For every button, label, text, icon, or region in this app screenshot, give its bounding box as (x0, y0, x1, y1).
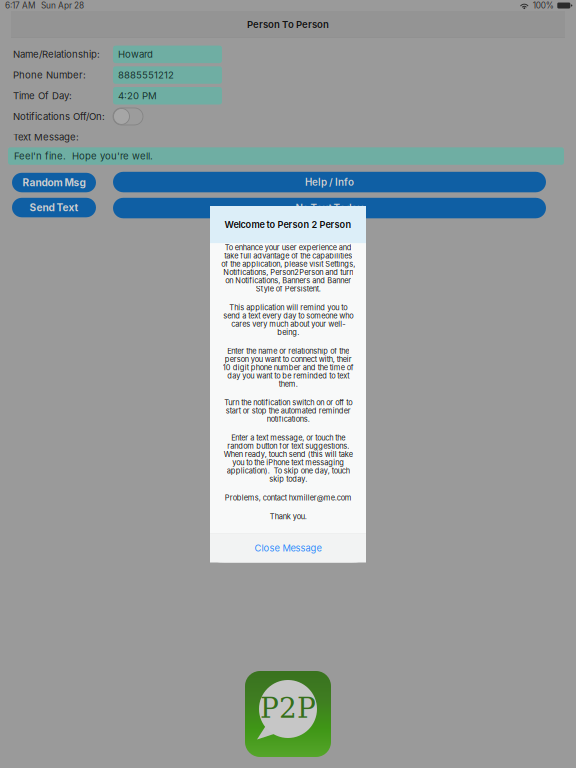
staticText: This application will remind you to send… (223, 303, 353, 337)
staticText: Random Msg (22, 176, 85, 189)
staticText: Enter the name or relationship of the pe… (222, 346, 353, 388)
staticText: Notifications Off/On: (13, 111, 105, 122)
staticText: 8885551212 (118, 69, 174, 81)
button[interactable]: Close Message (210, 533, 366, 562)
staticText: Thank you. (269, 512, 306, 521)
staticText: Feel'n fine. Hope you're well. (14, 150, 153, 162)
staticText: 100% (533, 0, 554, 10)
button[interactable]: Howard (113, 46, 222, 63)
staticText: Name/Relationship: (13, 48, 100, 60)
button[interactable]: Notifications on or off (113, 108, 143, 125)
staticText: No Text Today (295, 202, 363, 214)
staticText: Close Message (254, 542, 321, 554)
button[interactable]: 4:20 PM (113, 87, 222, 104)
button[interactable]: 8885551212 (113, 66, 222, 84)
staticText: Send Text (29, 201, 78, 214)
staticText: Problems, contact hxmiller@me.com (224, 493, 351, 502)
staticText: Help / Info (305, 176, 354, 188)
staticText: Text Message: (13, 131, 79, 143)
staticText: 4:20 PM (118, 90, 157, 101)
button[interactable]: Send Text (12, 198, 96, 217)
staticText: Sun Apr 28 (41, 0, 84, 10)
staticText: Howard (118, 48, 153, 60)
staticText: To enhance your user experience and take… (221, 243, 355, 293)
button[interactable]: Random Msg (12, 173, 96, 192)
staticText: Phone Number: (13, 69, 86, 81)
staticText: P2P (260, 692, 316, 724)
button[interactable]: No Text Today (113, 198, 546, 218)
button[interactable]: Feel'n fine. Hope you're well. (8, 147, 564, 165)
staticText: Welcome to Person 2 Person (224, 219, 351, 230)
staticText: Enter a text message, or touch the rando… (223, 433, 352, 483)
button[interactable]: Help / Info (113, 172, 546, 192)
staticText: Turn the notification switch on or off t… (224, 398, 352, 424)
staticText: Person To Person (247, 19, 329, 30)
staticText: Time Of Day: (13, 90, 72, 101)
staticText: 6:17 AM (5, 0, 35, 10)
